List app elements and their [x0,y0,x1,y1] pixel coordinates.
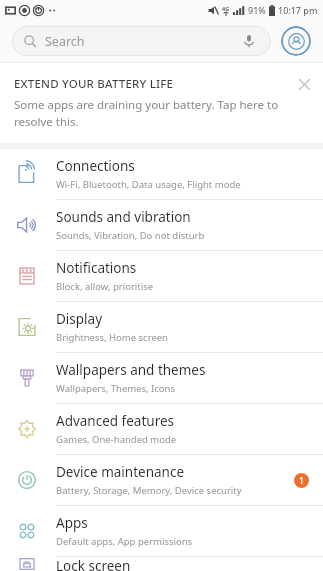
staticText: Advanced features [56,412,175,430]
staticText: Some apps are draining your battery. Tap… [14,97,289,129]
button[interactable]: Connections [0,149,323,199]
staticText: Search [45,33,85,50]
button[interactable]: Samsung account [281,26,311,56]
staticText: Brightness, Home screen [56,331,168,344]
staticText: Sounds, Vibration, Do not disturb [56,229,205,242]
button[interactable]: Lock screen [0,557,323,571]
staticText: Wi-Fi, Bluetooth, Data usage, Flight mod… [56,178,241,191]
staticText: 1 [299,475,304,487]
staticText: Sounds and vibration [56,208,191,226]
staticText: 10:17 pm [278,4,318,16]
staticText: Wallpapers and themes [56,361,206,379]
button[interactable]: Dismiss [291,71,317,97]
staticText: EXTEND YOUR BATTERY LIFE [14,76,174,92]
staticText: 4G [222,5,230,12]
staticText: Battery, Storage, Memory, Device securit… [56,484,242,497]
button[interactable]: Display [0,302,323,352]
button[interactable]: Voice search [239,31,259,51]
button[interactable]: Device maintenance [0,455,323,505]
staticText: Apps [56,514,88,532]
staticText: Lock screen [56,557,131,571]
button[interactable]: Notifications [0,251,323,301]
staticText: Device maintenance [56,463,185,481]
staticText: Block, allow, prioritise [56,280,154,293]
staticText: Notifications [56,259,137,277]
staticText: Default apps, App permissions [56,535,193,548]
button[interactable]: Advanced features [0,404,323,454]
staticText: Games, One-handed mode [56,433,177,446]
button[interactable]: Apps [0,506,323,556]
button[interactable]: EXTEND YOUR BATTERY LIFE [0,63,323,143]
button[interactable]: Search [12,26,271,56]
staticText: 91% [248,4,266,16]
staticText: Wallpapers, Themes, Icons [56,382,176,395]
button[interactable]: Wallpapers and themes [0,353,323,403]
staticText: Connections [56,157,135,175]
button[interactable]: Sounds and vibration [0,200,323,250]
staticText: Display [56,310,103,328]
